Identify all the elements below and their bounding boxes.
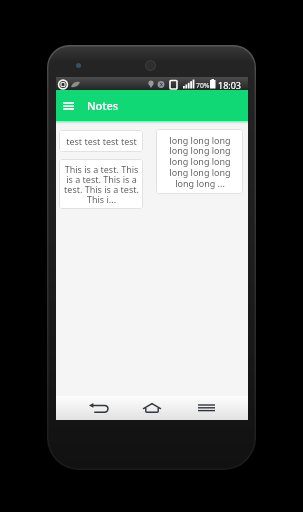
staticText: Notes: [87, 98, 119, 113]
button[interactable]: This is a test. This is a test. This is …: [59, 159, 143, 209]
button[interactable]: [179, 396, 233, 420]
staticText: 18:03: [218, 79, 242, 91]
button[interactable]: test test test test: [59, 130, 143, 152]
button[interactable]: [125, 396, 179, 420]
staticText: test test test test: [66, 135, 137, 147]
staticText: long long long long long long long long …: [169, 134, 231, 190]
staticText: This is a test. This is a test. This is …: [64, 163, 139, 206]
button[interactable]: long long long long long long long long …: [156, 129, 243, 194]
button[interactable]: Notes: [56, 90, 248, 121]
staticText: 70%: [196, 81, 210, 90]
button[interactable]: [71, 396, 125, 420]
